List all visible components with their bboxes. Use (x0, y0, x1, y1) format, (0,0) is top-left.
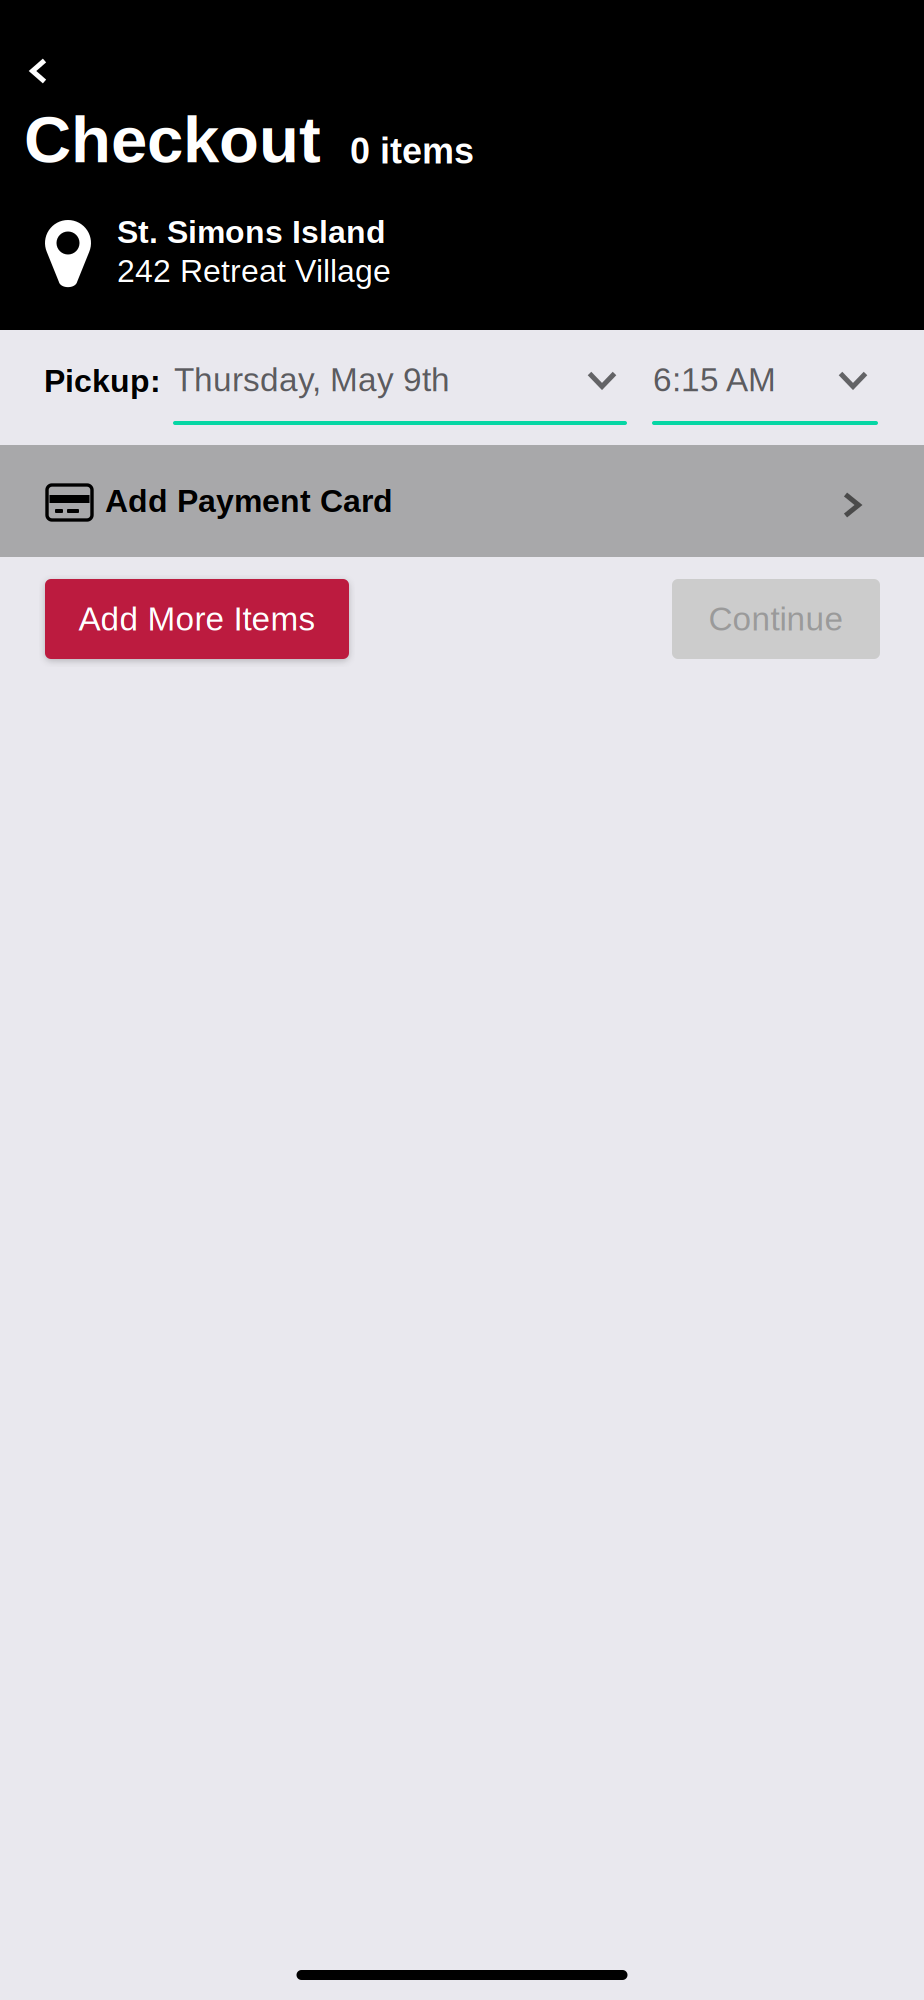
button[interactable]: 6:15 AM (652, 366, 878, 426)
staticText: Thursday, May 9th (174, 361, 450, 398)
staticText: Checkout (24, 103, 321, 176)
staticText: 0 items (350, 131, 474, 171)
staticText: Add More Items (78, 600, 315, 638)
staticText: 6:15 AM (653, 361, 776, 398)
staticText: Add Payment Card (105, 483, 393, 519)
button[interactable]: Back (0, 33, 68, 101)
staticText: 242 Retreat Village (117, 253, 391, 289)
staticText: Continue (708, 600, 843, 638)
button[interactable]: Continue (672, 579, 880, 659)
button[interactable]: Add Payment Card (0, 445, 924, 557)
staticText: St. Simons Island (117, 214, 386, 250)
button[interactable]: Thursday, May 9th (173, 366, 627, 426)
staticText: Pickup: (44, 363, 161, 399)
button[interactable]: Add More Items (45, 579, 349, 659)
